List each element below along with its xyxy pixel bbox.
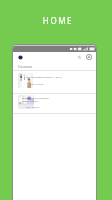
button[interactable]: Start Course — [30, 83, 44, 86]
button[interactable]: Account — [86, 54, 92, 60]
button[interactable]: Search — [77, 55, 82, 60]
staticText: Courses — [18, 64, 32, 69]
staticText: HOME — [2, 15, 112, 26]
staticText: BS ENGINEERING (BATCH 1 2021) — [26, 76, 62, 79]
staticText: BS NEET / JEE CHEMISTRY — [22, 97, 50, 100]
button[interactable]: Menu — [18, 55, 23, 60]
staticText: (TARGET 2025) — [22, 100, 38, 103]
button[interactable]: Start Course — [26, 106, 40, 109]
button[interactable]: BS ENGINEERING (BATCH 1 2021) — [13, 71, 96, 93]
button[interactable]: BS NEET / JEE CHEMISTRY — [13, 94, 96, 113]
